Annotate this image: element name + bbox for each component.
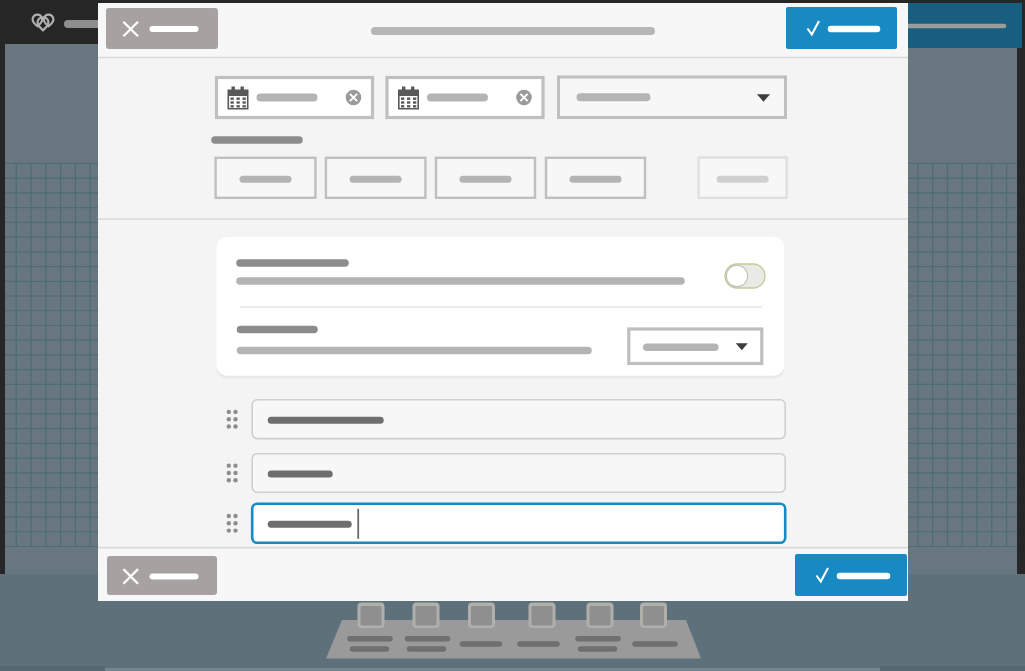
button[interactable]: Reorder item 2 [229, 454, 245, 493]
button[interactable]: Start date [217, 78, 373, 118]
button[interactable]: Tab 1 [216, 158, 316, 198]
button[interactable]: Tab 4 [546, 158, 645, 198]
button[interactable]: Tab 2 [326, 158, 426, 198]
button[interactable]: End date [387, 78, 543, 118]
button[interactable]: Cancel [107, 556, 217, 595]
button[interactable]: Choose option [629, 329, 762, 364]
button[interactable]: Reorder item 3 [229, 504, 245, 543]
button[interactable]: Item 2 text field [252, 454, 785, 493]
button[interactable]: Item 3 text field [252, 504, 785, 543]
button[interactable]: Cancel [106, 8, 218, 49]
button[interactable]: Save [786, 7, 897, 49]
button[interactable]: Toggle [725, 264, 765, 288]
button[interactable]: Save [795, 554, 907, 596]
button[interactable]: Reorder item 1 [229, 400, 245, 439]
button[interactable]: Status filter [559, 77, 786, 118]
button[interactable]: Item 1 text field [252, 400, 785, 439]
button[interactable]: Tab 3 [436, 158, 535, 198]
button[interactable]: Tab 5 [699, 158, 787, 198]
